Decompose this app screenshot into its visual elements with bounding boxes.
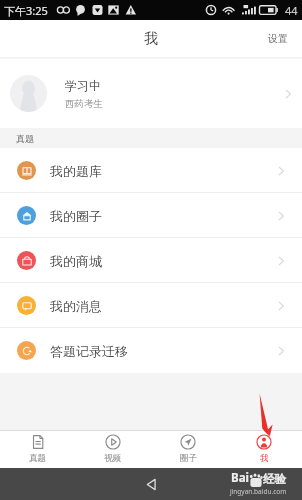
button[interactable]: 我的消息 [0,283,302,328]
staticText: 真题 [16,133,34,144]
staticText: 设置 [268,32,288,45]
staticText: 经验 [263,472,286,486]
staticText: 44 [285,3,298,18]
button[interactable]: 我 [226,430,302,468]
staticText: 我的题库 [50,163,102,179]
button[interactable]: 视频 [75,430,150,468]
staticText: jingyan.baidu.com [230,487,287,496]
staticText: 真题 [29,453,46,464]
staticText: 答题记录迁移 [50,343,128,359]
staticText: 下午3:25 [4,3,48,18]
staticText: 我的圈子 [50,208,102,224]
staticText: 我 [260,453,269,464]
staticText: 我的消息 [50,298,102,314]
staticText: 西药考生 [65,98,103,110]
staticText: 我的商城 [50,253,102,269]
button[interactable]: 我的圈子 [0,193,302,238]
button[interactable]: 真题 [0,430,75,468]
button[interactable]: 设置 [254,20,302,57]
button[interactable]: 我的商城 [0,238,302,283]
button[interactable]: 我的题库 [0,148,302,193]
button[interactable]: 圈子 [150,430,226,468]
staticText: 视频 [104,453,121,464]
staticText: 圈子 [180,453,197,464]
staticText: 学习中 [65,78,101,93]
button[interactable]: 答题记录迁移 [0,328,302,373]
staticText: 我 [144,30,158,48]
staticText: Bai [231,470,249,486]
button[interactable]: 学习中 [0,59,302,128]
other: Back [144,477,159,492]
